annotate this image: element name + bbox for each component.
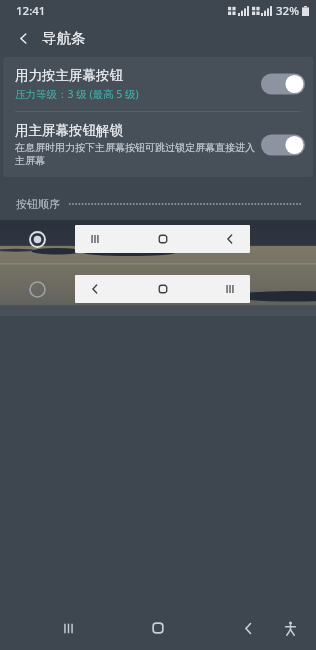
- button[interactable]: Select order: [0, 275, 75, 303]
- button[interactable]: Toggle on: [261, 72, 305, 96]
- button[interactable]: Recents: [46, 606, 90, 650]
- button[interactable]: 用主屏幕按钮解锁: [3, 112, 313, 177]
- staticText: 32%: [276, 3, 299, 19]
- staticText: 在息屏时用力按下主屏幕按钮可跳过锁定屏幕直接进入: [15, 141, 255, 154]
- button[interactable]: Toggle on: [261, 133, 305, 157]
- button[interactable]: Order selected: [0, 225, 75, 253]
- button[interactable]: Accessibility: [270, 608, 310, 648]
- staticText: 12:41: [16, 3, 46, 19]
- staticText: 压力等级：3 级 (最高 5 级): [15, 87, 139, 101]
- staticText: 按钮顺序: [16, 197, 60, 211]
- staticText: 导航条: [42, 29, 86, 47]
- staticText: 主屏幕: [15, 154, 45, 167]
- button[interactable]: Back: [226, 606, 270, 650]
- button[interactable]: [75, 275, 250, 303]
- staticText: 用主屏幕按钮解锁: [15, 122, 123, 139]
- button[interactable]: Home: [136, 606, 180, 650]
- staticText: 用力按主屏幕按钮: [15, 67, 123, 84]
- button[interactable]: [75, 225, 250, 253]
- button[interactable]: 用力按主屏幕按钮: [3, 57, 313, 111]
- button[interactable]: Back: [8, 23, 38, 53]
